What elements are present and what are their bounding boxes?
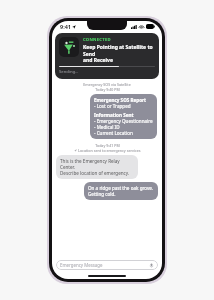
other: Dictate message xyxy=(149,263,154,268)
staticText: Keep Pointing at Satellite to Send and R… xyxy=(83,44,155,63)
staticText: - Medical ID xyxy=(94,124,120,130)
staticText: Emergency Message xyxy=(60,262,103,268)
button[interactable]: Emergency SOS Report xyxy=(90,94,157,139)
staticText: Emergency SOS Report xyxy=(94,97,147,103)
button[interactable]: This is the Emergency Relay Center. Desc… xyxy=(56,155,138,179)
staticText: Emergency SOS via Satellite xyxy=(83,82,131,87)
button[interactable]: On a ridge past the oak grove. Getting c… xyxy=(84,182,158,200)
staticText: - Current Location xyxy=(94,130,133,136)
staticText: This is the Emergency Relay Center. Desc… xyxy=(60,158,134,176)
staticText: Location sent to emergency services xyxy=(78,148,141,153)
button[interactable]: Emergency Message xyxy=(56,260,158,270)
staticText: CONNECTED xyxy=(83,37,111,43)
staticText: Information Sent xyxy=(94,112,134,118)
button[interactable]: CONNECTED xyxy=(55,33,159,79)
staticText: - Lost or Trapped xyxy=(94,103,131,109)
staticText: Today 9:41 PM xyxy=(95,143,120,148)
staticText: On a ridge past the oak grove. Getting c… xyxy=(88,185,154,197)
staticText: Today 9:40 PM xyxy=(95,87,120,92)
staticText: - Emergency Questionnaire xyxy=(94,118,153,124)
staticText: Sending... xyxy=(59,69,79,75)
staticText: 9:41 xyxy=(60,23,71,30)
